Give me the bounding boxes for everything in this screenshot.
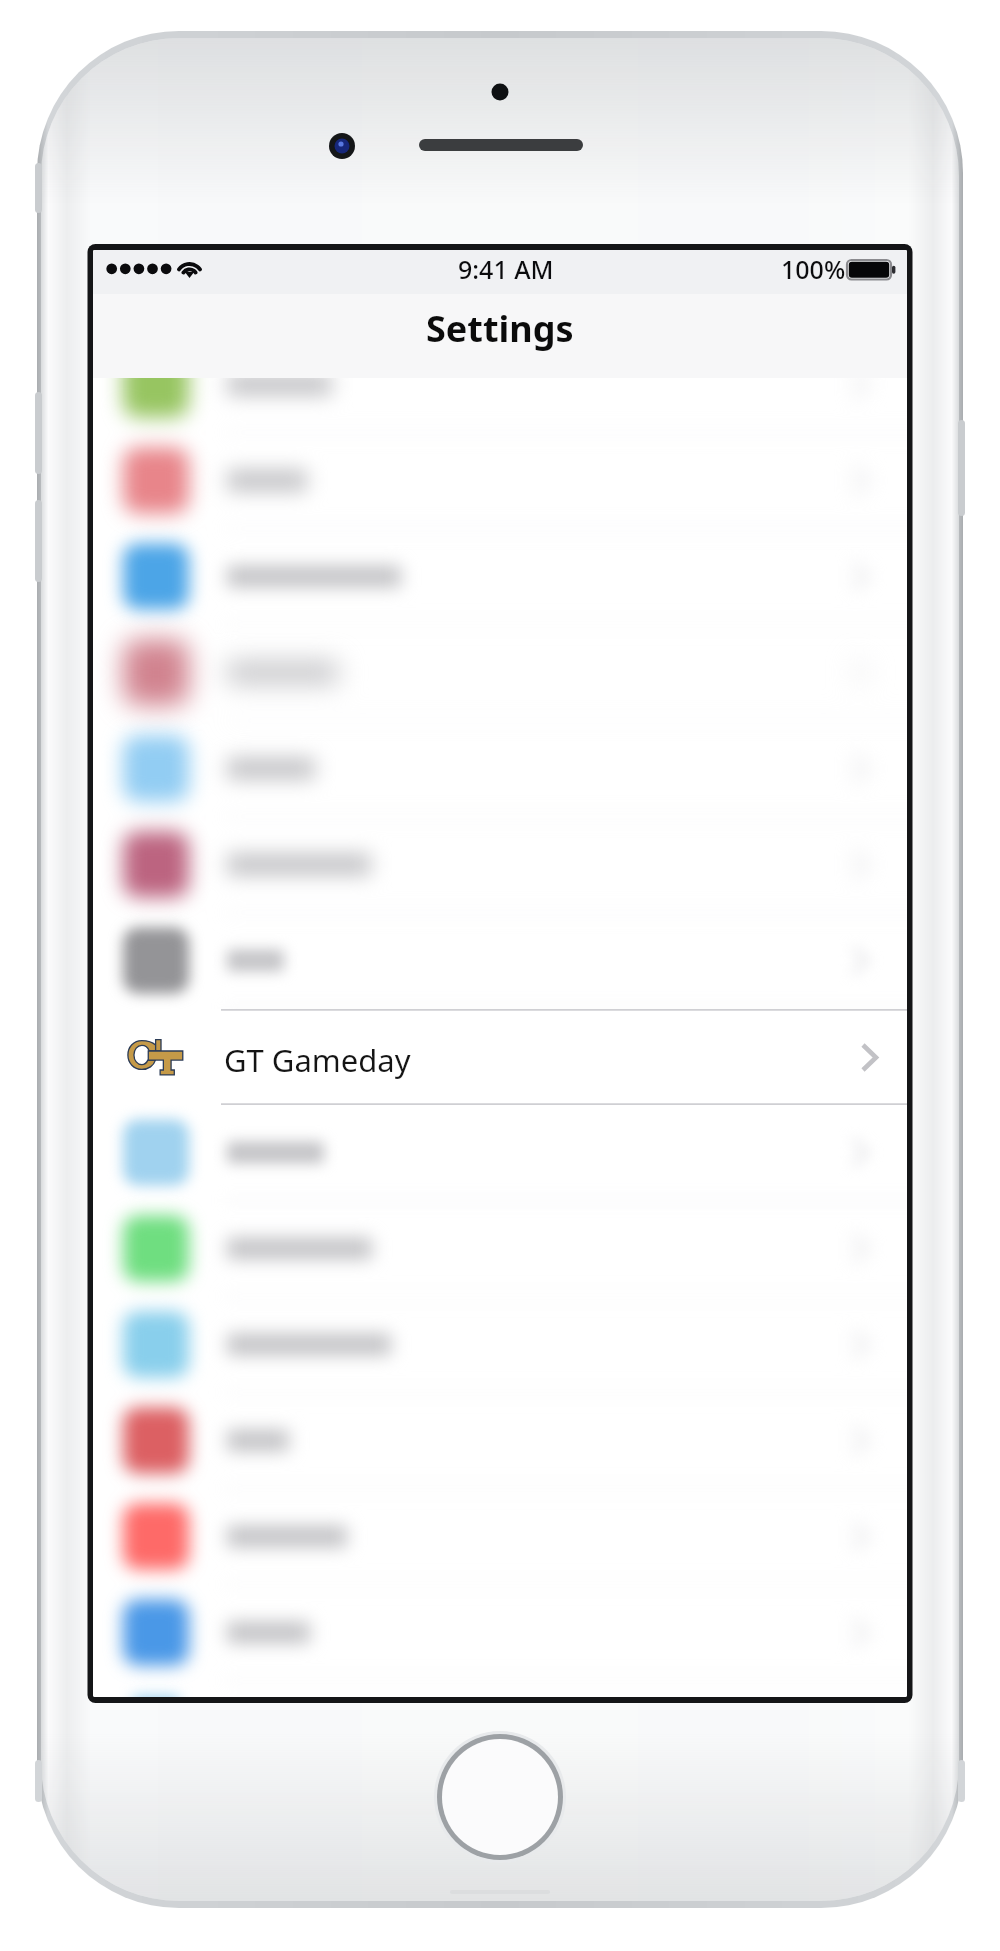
button[interactable]: [93, 625, 907, 721]
other: Open GT Gameday settings: [861, 1043, 878, 1072]
button[interactable]: [93, 721, 907, 817]
button[interactable]: [93, 1105, 907, 1201]
button[interactable]: [93, 1585, 907, 1681]
button[interactable]: [93, 1297, 907, 1393]
button[interactable]: [93, 913, 907, 1009]
staticText: GT Gameday: [224, 1039, 411, 1081]
staticText: Settings: [426, 304, 574, 353]
button[interactable]: [93, 529, 907, 625]
button[interactable]: GT Gameday: [93, 1009, 907, 1105]
button[interactable]: [93, 1489, 907, 1585]
staticText: 9:41 AM: [458, 252, 554, 286]
button[interactable]: [93, 1681, 907, 1697]
button[interactable]: [93, 1393, 907, 1489]
button[interactable]: [93, 1201, 907, 1297]
button[interactable]: [93, 817, 907, 913]
button[interactable]: [93, 433, 907, 529]
staticText: 100%: [781, 252, 846, 286]
button[interactable]: [93, 337, 907, 433]
